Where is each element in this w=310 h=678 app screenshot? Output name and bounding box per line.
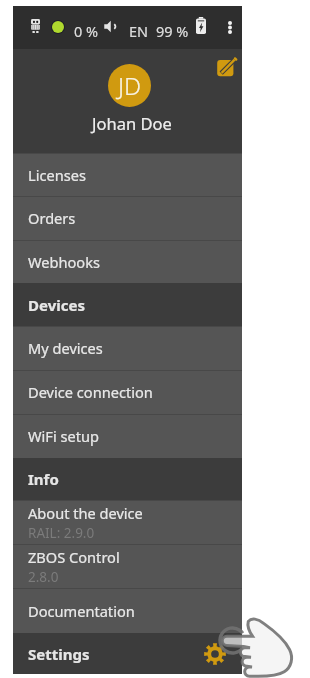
staticText: Settings (28, 644, 90, 664)
staticText: Orders (28, 208, 76, 228)
staticText: ZBOS Control (28, 547, 120, 567)
button[interactable]: About the device (13, 500, 242, 544)
button[interactable]: My devices (13, 326, 242, 370)
staticText: Info (28, 469, 59, 489)
button[interactable]: Orders (13, 196, 242, 240)
button[interactable]: Licenses (13, 153, 242, 196)
staticText: Devices (28, 295, 85, 315)
staticText: 99 % (156, 21, 189, 41)
button[interactable]: More options (219, 12, 241, 43)
staticText: Webhooks (28, 252, 100, 272)
button[interactable]: ZBOS Control (13, 544, 242, 588)
staticText: 2.8.0 (28, 568, 59, 586)
staticText: JD (118, 69, 142, 102)
staticText: EN (129, 21, 149, 41)
staticText: Documentation (28, 601, 135, 621)
button[interactable]: Info (13, 458, 242, 500)
staticText: 0 % (74, 21, 99, 41)
button[interactable]: WiFi setup (13, 414, 242, 458)
button[interactable]: Webhooks (13, 240, 242, 283)
button[interactable]: Edit profile (213, 55, 239, 81)
staticText: About the device (28, 503, 143, 523)
button[interactable]: Device connection (13, 370, 242, 414)
button[interactable]: Settings (13, 633, 242, 674)
staticText: Device connection (28, 382, 153, 402)
staticText: Licenses (28, 165, 86, 185)
staticText: WiFi setup (28, 426, 99, 446)
button[interactable]: Devices (13, 283, 242, 326)
staticText: Johan Doe (92, 112, 172, 134)
staticText: My devices (28, 338, 103, 358)
staticText: RAIL: 2.9.0 (28, 524, 95, 542)
button[interactable]: Documentation (13, 588, 242, 633)
